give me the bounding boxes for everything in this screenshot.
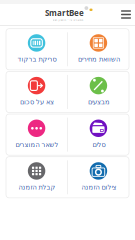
staticText: סלים <box>92 141 105 148</box>
button[interactable]: השוואת מחירים <box>68 29 129 70</box>
button[interactable]: קבלת הזמנה <box>6 157 67 198</box>
button[interactable]: סלים <box>68 114 129 155</box>
staticText: השוואת מחירים <box>77 55 119 63</box>
button[interactable]: מבצעים <box>68 71 129 113</box>
button[interactable]: לשאר המוצרים <box>6 114 67 155</box>
staticText: סמארט בי ־ חיסכון חכם <box>52 18 83 21</box>
staticText: SmartBee <box>45 7 84 18</box>
staticText: צילום הזמנה <box>81 183 116 191</box>
staticText: מבצעים <box>87 98 109 106</box>
button[interactable]: Menu <box>118 6 134 23</box>
staticText: סריקת ברקוד <box>17 55 56 63</box>
button[interactable]: צא על סכום <box>6 71 67 113</box>
button[interactable]: צילום הזמנה <box>68 157 129 198</box>
button[interactable]: סריקת ברקוד <box>6 29 67 70</box>
staticText: צא על סכום <box>20 98 54 106</box>
staticText: קבלת הזמנה <box>18 183 55 191</box>
staticText: לשאר המוצרים <box>15 141 58 148</box>
